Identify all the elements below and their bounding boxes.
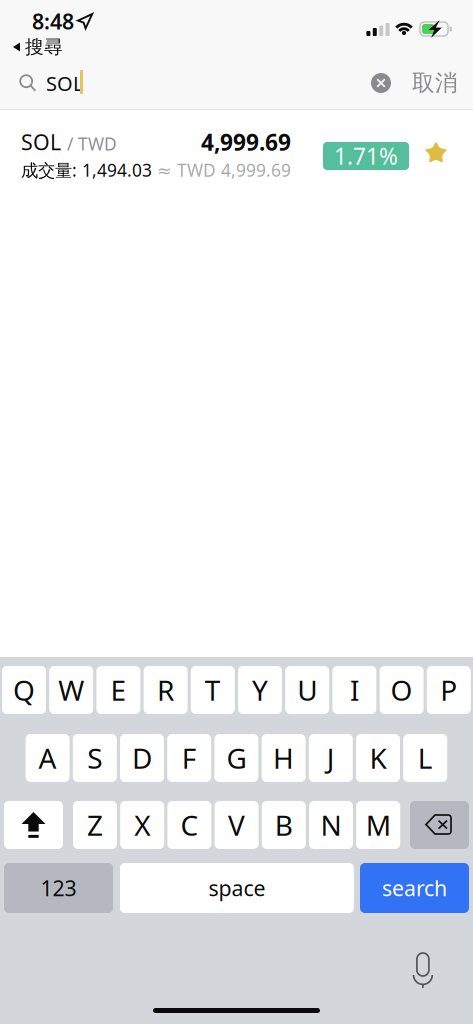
button[interactable]: 搜尋 bbox=[0, 36, 73, 58]
button[interactable]: R bbox=[144, 666, 188, 714]
staticText: A bbox=[39, 739, 57, 777]
button[interactable]: W bbox=[49, 666, 93, 714]
staticText: space bbox=[208, 874, 265, 902]
staticText: 123 bbox=[40, 874, 76, 902]
button[interactable]: space bbox=[120, 863, 354, 913]
button[interactable]: search bbox=[360, 863, 469, 913]
staticText: G bbox=[226, 739, 246, 777]
staticText: I bbox=[350, 671, 359, 709]
staticText: 取消 bbox=[412, 69, 458, 97]
staticText: D bbox=[132, 739, 152, 777]
button[interactable]: 123 bbox=[4, 863, 113, 913]
staticText: 1.71% bbox=[334, 141, 398, 171]
staticText: B bbox=[275, 806, 293, 844]
staticText: 成交量: 1,494.03 bbox=[21, 158, 152, 181]
staticText: Q bbox=[13, 671, 35, 709]
button[interactable]: 取消 bbox=[406, 64, 464, 102]
button[interactable]: S bbox=[73, 734, 117, 782]
button[interactable]: E bbox=[96, 666, 140, 714]
staticText: search bbox=[382, 874, 447, 902]
staticText: R bbox=[157, 671, 174, 709]
staticText: Y bbox=[252, 671, 268, 709]
button[interactable]: Clear search text bbox=[362, 64, 400, 102]
staticText: 4,999.69 bbox=[201, 127, 291, 157]
staticText: N bbox=[320, 806, 341, 844]
staticText: T bbox=[205, 671, 221, 709]
button[interactable]: X bbox=[120, 801, 164, 849]
button[interactable]: D bbox=[120, 734, 164, 782]
staticText: / TWD bbox=[67, 132, 117, 155]
staticText: SOL bbox=[46, 70, 83, 97]
button[interactable]: F bbox=[167, 734, 211, 782]
staticText: C bbox=[180, 806, 198, 844]
button[interactable]: U bbox=[285, 666, 329, 714]
staticText: S bbox=[87, 739, 102, 777]
button[interactable]: M bbox=[356, 801, 400, 849]
button[interactable]: O bbox=[380, 666, 424, 714]
button[interactable]: Dictate bbox=[401, 949, 445, 993]
staticText: W bbox=[58, 671, 84, 709]
staticText: V bbox=[228, 806, 245, 844]
button[interactable]: G bbox=[214, 734, 258, 782]
button[interactable]: Z bbox=[73, 801, 117, 849]
button[interactable]: B bbox=[262, 801, 306, 849]
button[interactable]: L bbox=[403, 734, 447, 782]
staticText: SOL bbox=[21, 128, 61, 156]
button[interactable]: Y bbox=[238, 666, 282, 714]
button[interactable]: Delete bbox=[410, 801, 469, 849]
staticText: H bbox=[273, 739, 294, 777]
button[interactable]: Shift bbox=[4, 801, 63, 849]
staticText: 搜尋 bbox=[25, 35, 63, 58]
button[interactable]: Q bbox=[2, 666, 46, 714]
staticText: K bbox=[369, 739, 386, 777]
button[interactable]: K bbox=[356, 734, 400, 782]
button[interactable]: P bbox=[427, 666, 471, 714]
staticText: ≈ TWD 4,999.69 bbox=[157, 158, 291, 181]
staticText: O bbox=[391, 671, 413, 709]
button[interactable]: J bbox=[309, 734, 353, 782]
staticText: X bbox=[134, 806, 150, 844]
button[interactable]: T bbox=[191, 666, 235, 714]
staticText: J bbox=[327, 739, 335, 777]
staticText: Z bbox=[87, 806, 103, 844]
staticText: 8:48 bbox=[32, 7, 74, 35]
staticText: P bbox=[440, 671, 457, 709]
staticText: M bbox=[366, 806, 391, 844]
button[interactable]: A bbox=[26, 734, 70, 782]
button[interactable]: I bbox=[332, 666, 376, 714]
staticText: U bbox=[297, 671, 317, 709]
staticText: E bbox=[110, 671, 126, 709]
button[interactable]: N bbox=[309, 801, 353, 849]
button[interactable]: SOL bbox=[0, 110, 473, 190]
staticText: F bbox=[182, 739, 197, 777]
button[interactable]: V bbox=[215, 801, 259, 849]
button[interactable]: C bbox=[167, 801, 211, 849]
staticText: L bbox=[418, 739, 433, 777]
button[interactable]: H bbox=[262, 734, 306, 782]
